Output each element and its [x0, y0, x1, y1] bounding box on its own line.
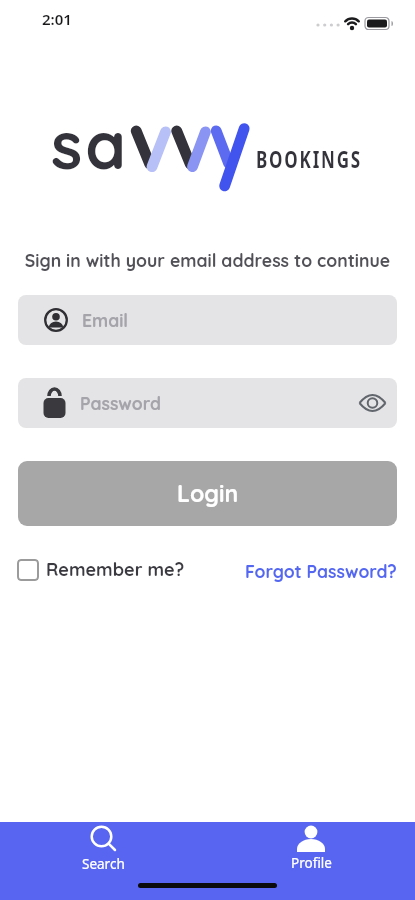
button[interactable]: Password — [18, 378, 397, 428]
button[interactable] — [17, 559, 39, 581]
button[interactable]: Remember me? — [46, 558, 185, 581]
staticText: Password — [80, 392, 161, 414]
button[interactable]: Email — [18, 295, 397, 345]
staticText: BOOKINGS — [256, 144, 362, 175]
staticText: Search — [82, 855, 125, 873]
button[interactable]: Search — [0, 822, 207, 900]
button[interactable]: Forgot Password? — [245, 560, 397, 582]
staticText: sa — [51, 104, 129, 185]
staticText: Login — [177, 479, 239, 508]
staticText: Sign in with your email address to conti… — [0, 249, 415, 271]
staticText: Email — [82, 309, 128, 331]
button[interactable]: Login — [18, 461, 397, 526]
staticText: Profile — [291, 854, 332, 872]
button[interactable]: Profile — [207, 822, 415, 900]
staticText: 2:01 — [42, 9, 72, 29]
